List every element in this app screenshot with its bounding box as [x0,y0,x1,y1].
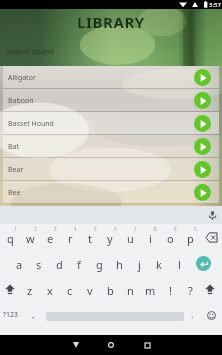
button[interactable]: ! [160,276,180,302]
staticText: 4 [74,226,77,232]
button[interactable]: z [20,276,40,302]
button[interactable]: f [69,250,89,276]
staticText: . [191,308,194,320]
staticText: ! [169,283,172,298]
staticText: Search Sound [6,46,55,56]
button[interactable]: Play Bat [194,138,211,155]
button[interactable]: b [100,276,120,302]
button[interactable]: 5 [80,224,100,250]
button[interactable]: Symbols [0,302,22,328]
button[interactable]: g [89,250,109,276]
button[interactable]: 8 [140,224,160,250]
staticText: u [127,231,134,246]
staticText: ? [188,283,193,298]
button[interactable]: 3 [40,224,60,250]
button[interactable]: Emoji [201,302,221,328]
staticText: g [96,257,103,272]
button[interactable]: 9 [160,224,180,250]
staticText: 6 [114,226,117,232]
staticText: i [149,231,152,246]
staticText: 0 [194,226,197,232]
button[interactable]: 0 [180,224,200,250]
button[interactable]: Baboon [3,89,219,112]
button[interactable]: 1 [0,224,20,250]
button[interactable]: j [129,250,149,276]
staticText: Bee [8,188,21,198]
button[interactable]: Enter [191,250,215,276]
staticText: 1 [14,226,17,232]
button[interactable]: c [60,276,80,302]
staticText: o [167,231,174,246]
staticText: 3 [54,226,57,232]
button[interactable]: d [49,250,69,276]
button[interactable]: Bear [3,158,219,181]
button[interactable]: l [169,250,189,276]
staticText: h [116,257,123,272]
staticText: a [16,257,23,272]
staticText: j [138,257,141,272]
staticText: s [36,257,42,272]
staticText: Baboon [8,96,34,106]
button[interactable]: Play Basset Hound [194,115,211,132]
button[interactable]: 4 [60,224,80,250]
staticText: e [47,231,54,246]
staticText: t [88,231,92,246]
staticText: 9 [174,226,177,232]
staticText: , [32,308,35,320]
staticText: 5 [94,226,97,232]
button[interactable]: Play Bee [194,184,211,201]
button[interactable]: 6 [100,224,120,250]
staticText: ?123 [3,310,19,320]
button[interactable]: a [9,250,29,276]
button[interactable]: v [80,276,100,302]
staticText: c [67,283,73,298]
button[interactable]: Play Baboon [194,92,211,109]
staticText: q [7,231,14,246]
staticText: x [47,283,53,298]
staticText: y [107,231,113,246]
button[interactable]: Play Bear [194,161,211,178]
button[interactable]: 2 [20,224,40,250]
staticText: m [145,283,156,298]
button[interactable]: m [140,276,160,302]
staticText: b [107,283,114,298]
staticText: v [87,283,93,298]
staticText: n [127,283,134,298]
staticText: Basset Hound [8,119,54,129]
staticText: f [77,257,81,272]
button[interactable]: Backspace [200,224,222,250]
button[interactable]: Bee [3,181,219,204]
staticText: Alligator [8,73,36,83]
staticText: w [26,231,35,246]
button[interactable]: Shift [0,276,20,302]
button[interactable]: h [109,250,129,276]
button[interactable]: Comma [23,302,43,328]
staticText: LIBRARY [77,12,145,32]
button[interactable]: Recents [137,335,157,355]
button[interactable]: Shift [199,276,221,302]
button[interactable]: k [149,250,169,276]
button[interactable]: ? [180,276,200,302]
staticText: z [27,283,33,298]
staticText: 8 [154,226,157,232]
button[interactable]: n [120,276,140,302]
button[interactable]: 7 [120,224,140,250]
staticText: Bear [8,165,24,175]
button[interactable]: s [29,250,49,276]
staticText: 7 [134,226,137,232]
staticText: 3:57 [209,1,221,9]
button[interactable]: x [40,276,60,302]
button[interactable]: Bat [3,135,219,158]
button[interactable]: Home [101,335,121,355]
staticText: 2 [34,226,37,232]
staticText: l [178,257,181,272]
button[interactable]: Voice input [204,207,220,223]
staticText: d [56,257,63,272]
button[interactable]: Period [183,302,201,328]
button[interactable]: Basset Hound [3,112,219,135]
button[interactable]: Alligator [3,66,219,89]
button[interactable]: Back [66,335,86,355]
staticText: k [156,257,162,272]
button[interactable]: Play Alligator [194,69,211,86]
